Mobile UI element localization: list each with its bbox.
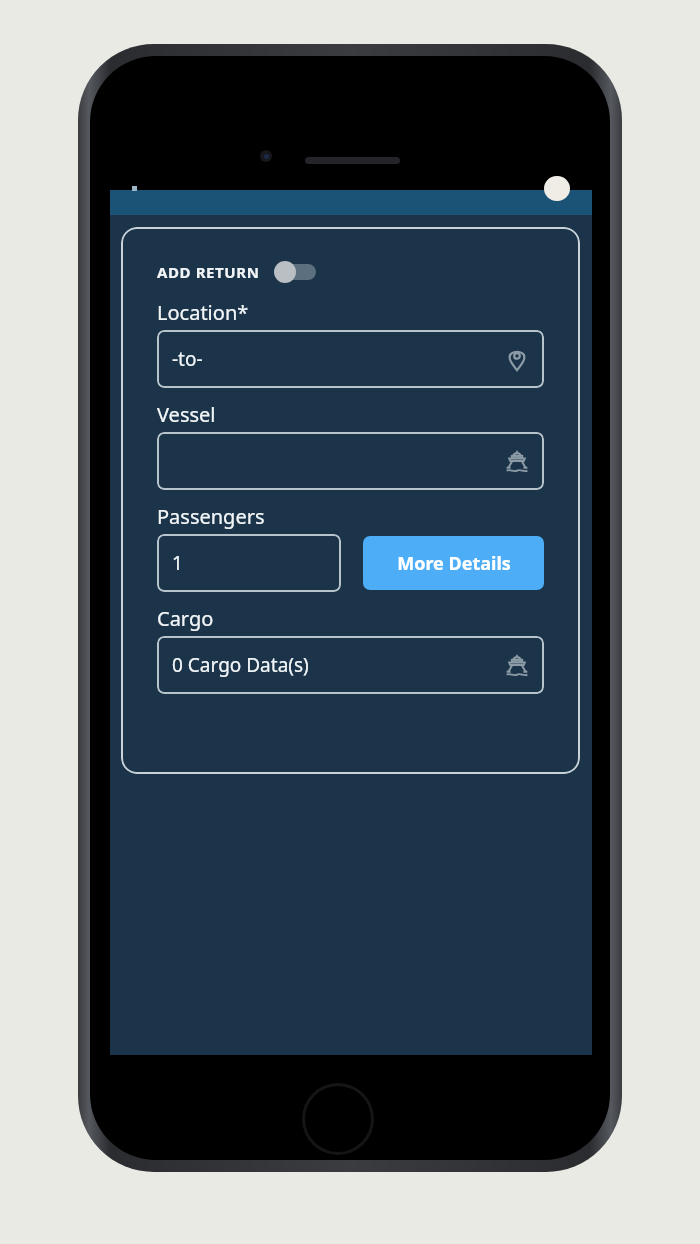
staticText: 1 [172,550,183,576]
staticText: Location* [157,299,249,326]
button[interactable]: Profile [544,176,570,201]
button[interactable]: Add return toggle [274,261,316,283]
staticText: Vessel [157,401,216,428]
button[interactable]: Cargo data [157,636,544,694]
button[interactable]: Select vessel [157,432,544,490]
staticText: 0 Cargo Data(s) [172,652,309,678]
button[interactable]: Pick location [157,330,544,388]
staticText: ADD RETURN [157,262,260,282]
staticText: More Details [397,551,511,576]
staticText: -to- [172,346,203,372]
staticText: Cargo [157,605,214,632]
staticText: Passengers [157,503,265,530]
button[interactable]: 1 [157,534,341,592]
button[interactable]: ADD RETURN [157,257,324,287]
button[interactable]: More Details [363,536,544,590]
